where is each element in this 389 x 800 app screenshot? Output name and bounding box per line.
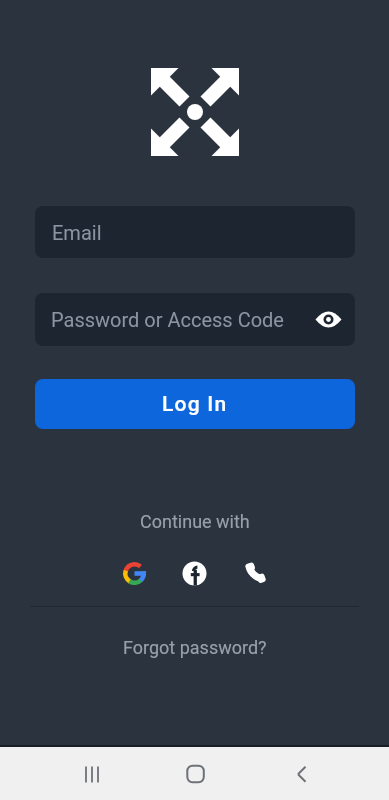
button[interactable] bbox=[244, 562, 266, 584]
button[interactable] bbox=[78, 760, 106, 788]
button[interactable]: Forgot password? bbox=[0, 637, 389, 658]
button[interactable]: Email bbox=[35, 206, 355, 258]
staticText: Forgot password? bbox=[123, 637, 267, 658]
button[interactable] bbox=[181, 760, 209, 788]
staticText: Email bbox=[52, 221, 102, 244]
button[interactable] bbox=[182, 561, 207, 586]
button[interactable] bbox=[123, 562, 146, 585]
button[interactable] bbox=[315, 311, 342, 328]
button[interactable]: Password or Access Code bbox=[35, 293, 355, 346]
button[interactable]: Log In bbox=[35, 379, 355, 429]
staticText: Log In bbox=[162, 392, 228, 417]
button[interactable] bbox=[288, 760, 316, 788]
staticText: Password or Access Code bbox=[51, 308, 284, 331]
staticText: Continue with bbox=[140, 511, 250, 532]
